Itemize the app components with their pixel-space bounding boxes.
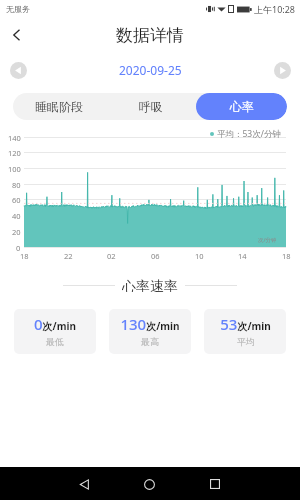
staticText: 无服务: [6, 4, 30, 14]
button[interactable]: 心率: [196, 93, 287, 120]
staticText: 心率速率: [122, 278, 178, 292]
staticText: 平均：53次/分钟: [217, 128, 281, 140]
staticText: 0: [16, 243, 21, 253]
staticText: 130次/min: [120, 314, 180, 334]
staticText: 120: [8, 148, 21, 158]
staticText: 140: [8, 133, 21, 143]
staticText: 10: [195, 251, 204, 261]
staticText: 80: [12, 180, 21, 190]
button[interactable]: Previous day: [8, 60, 28, 80]
staticText: 上午10:28: [254, 3, 296, 15]
button[interactable]: 53次/min: [204, 309, 286, 354]
staticText: 100: [8, 164, 21, 174]
staticText: 14: [238, 251, 247, 261]
button[interactable]: Back: [0, 18, 34, 52]
button[interactable]: 130次/min: [109, 309, 191, 354]
button[interactable]: 呼吸: [105, 93, 196, 120]
staticText: 数据详情: [116, 25, 184, 46]
staticText: 20: [12, 227, 21, 237]
staticText: 02: [107, 251, 116, 261]
staticText: 53次/min: [220, 314, 271, 334]
button[interactable]: Next day: [272, 60, 292, 80]
staticText: 呼吸: [139, 99, 163, 114]
button[interactable]: Home: [135, 470, 163, 498]
staticText: 最高: [141, 336, 159, 347]
staticText: 06: [151, 251, 160, 261]
staticText: 0次/min: [34, 314, 76, 334]
button[interactable]: 0次/min: [14, 309, 96, 354]
staticText: 18: [282, 251, 291, 261]
staticText: 60: [12, 195, 21, 205]
staticText: 2020-09-25: [119, 62, 182, 78]
button[interactable]: Recents: [201, 470, 229, 498]
staticText: 40: [12, 211, 21, 221]
button[interactable]: Back: [70, 470, 98, 498]
staticText: 心率: [230, 99, 254, 114]
staticText: 22: [64, 251, 73, 261]
staticText: 18: [20, 251, 29, 261]
staticText: 次/分钟: [258, 236, 277, 244]
staticText: 最低: [46, 336, 64, 347]
staticText: 睡眠阶段: [35, 99, 83, 114]
button[interactable]: 睡眠阶段: [13, 93, 105, 120]
staticText: 平均: [237, 336, 255, 347]
